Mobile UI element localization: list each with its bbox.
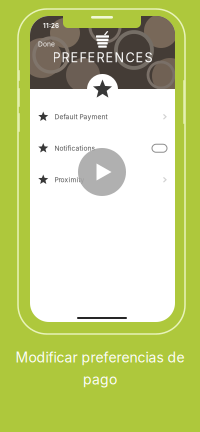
button[interactable]: Default Payment — [30, 101, 175, 132]
button[interactable]: Proximity — [30, 164, 175, 195]
staticText: Proximity — [54, 176, 84, 184]
button[interactable]: Done — [34, 38, 59, 50]
staticText: Done — [38, 40, 55, 48]
staticText: pago — [83, 371, 117, 388]
staticText: Default Payment — [54, 113, 107, 121]
staticText: 11:26 — [43, 22, 59, 29]
staticText: PREFERENCES — [52, 50, 152, 65]
staticText: Modificar preferencias de — [15, 349, 184, 366]
button[interactable]: Notifications — [30, 132, 175, 164]
staticText: Notifications — [54, 144, 95, 152]
